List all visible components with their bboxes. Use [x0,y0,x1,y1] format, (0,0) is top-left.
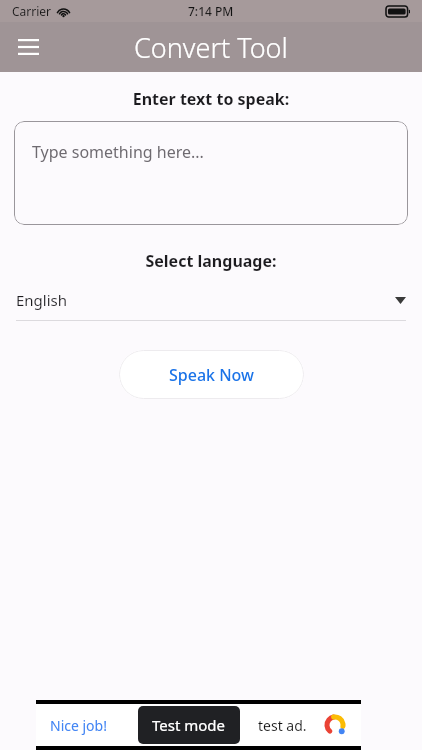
button[interactable]: English [16,288,406,321]
staticText: Enter text to speak: [0,88,422,110]
button[interactable]: Test mode [152,715,226,735]
staticText: Nice job! [50,716,107,735]
staticText: Speak Now [169,364,254,386]
button[interactable]: Type something here... [14,121,408,225]
button[interactable]: Advertisement banner [36,700,361,750]
staticText: Convert Tool [134,29,288,66]
staticText: Carrier [12,3,52,19]
staticText: Select language: [0,250,422,272]
staticText: English [16,290,68,310]
staticText: 7:14 PM [188,3,234,19]
staticText: Test mode [152,715,226,735]
button[interactable]: Speak Now [119,350,304,399]
button[interactable]: Open navigation menu [6,25,50,69]
staticText: Type something here... [32,141,204,163]
staticText: test ad. [258,716,307,735]
